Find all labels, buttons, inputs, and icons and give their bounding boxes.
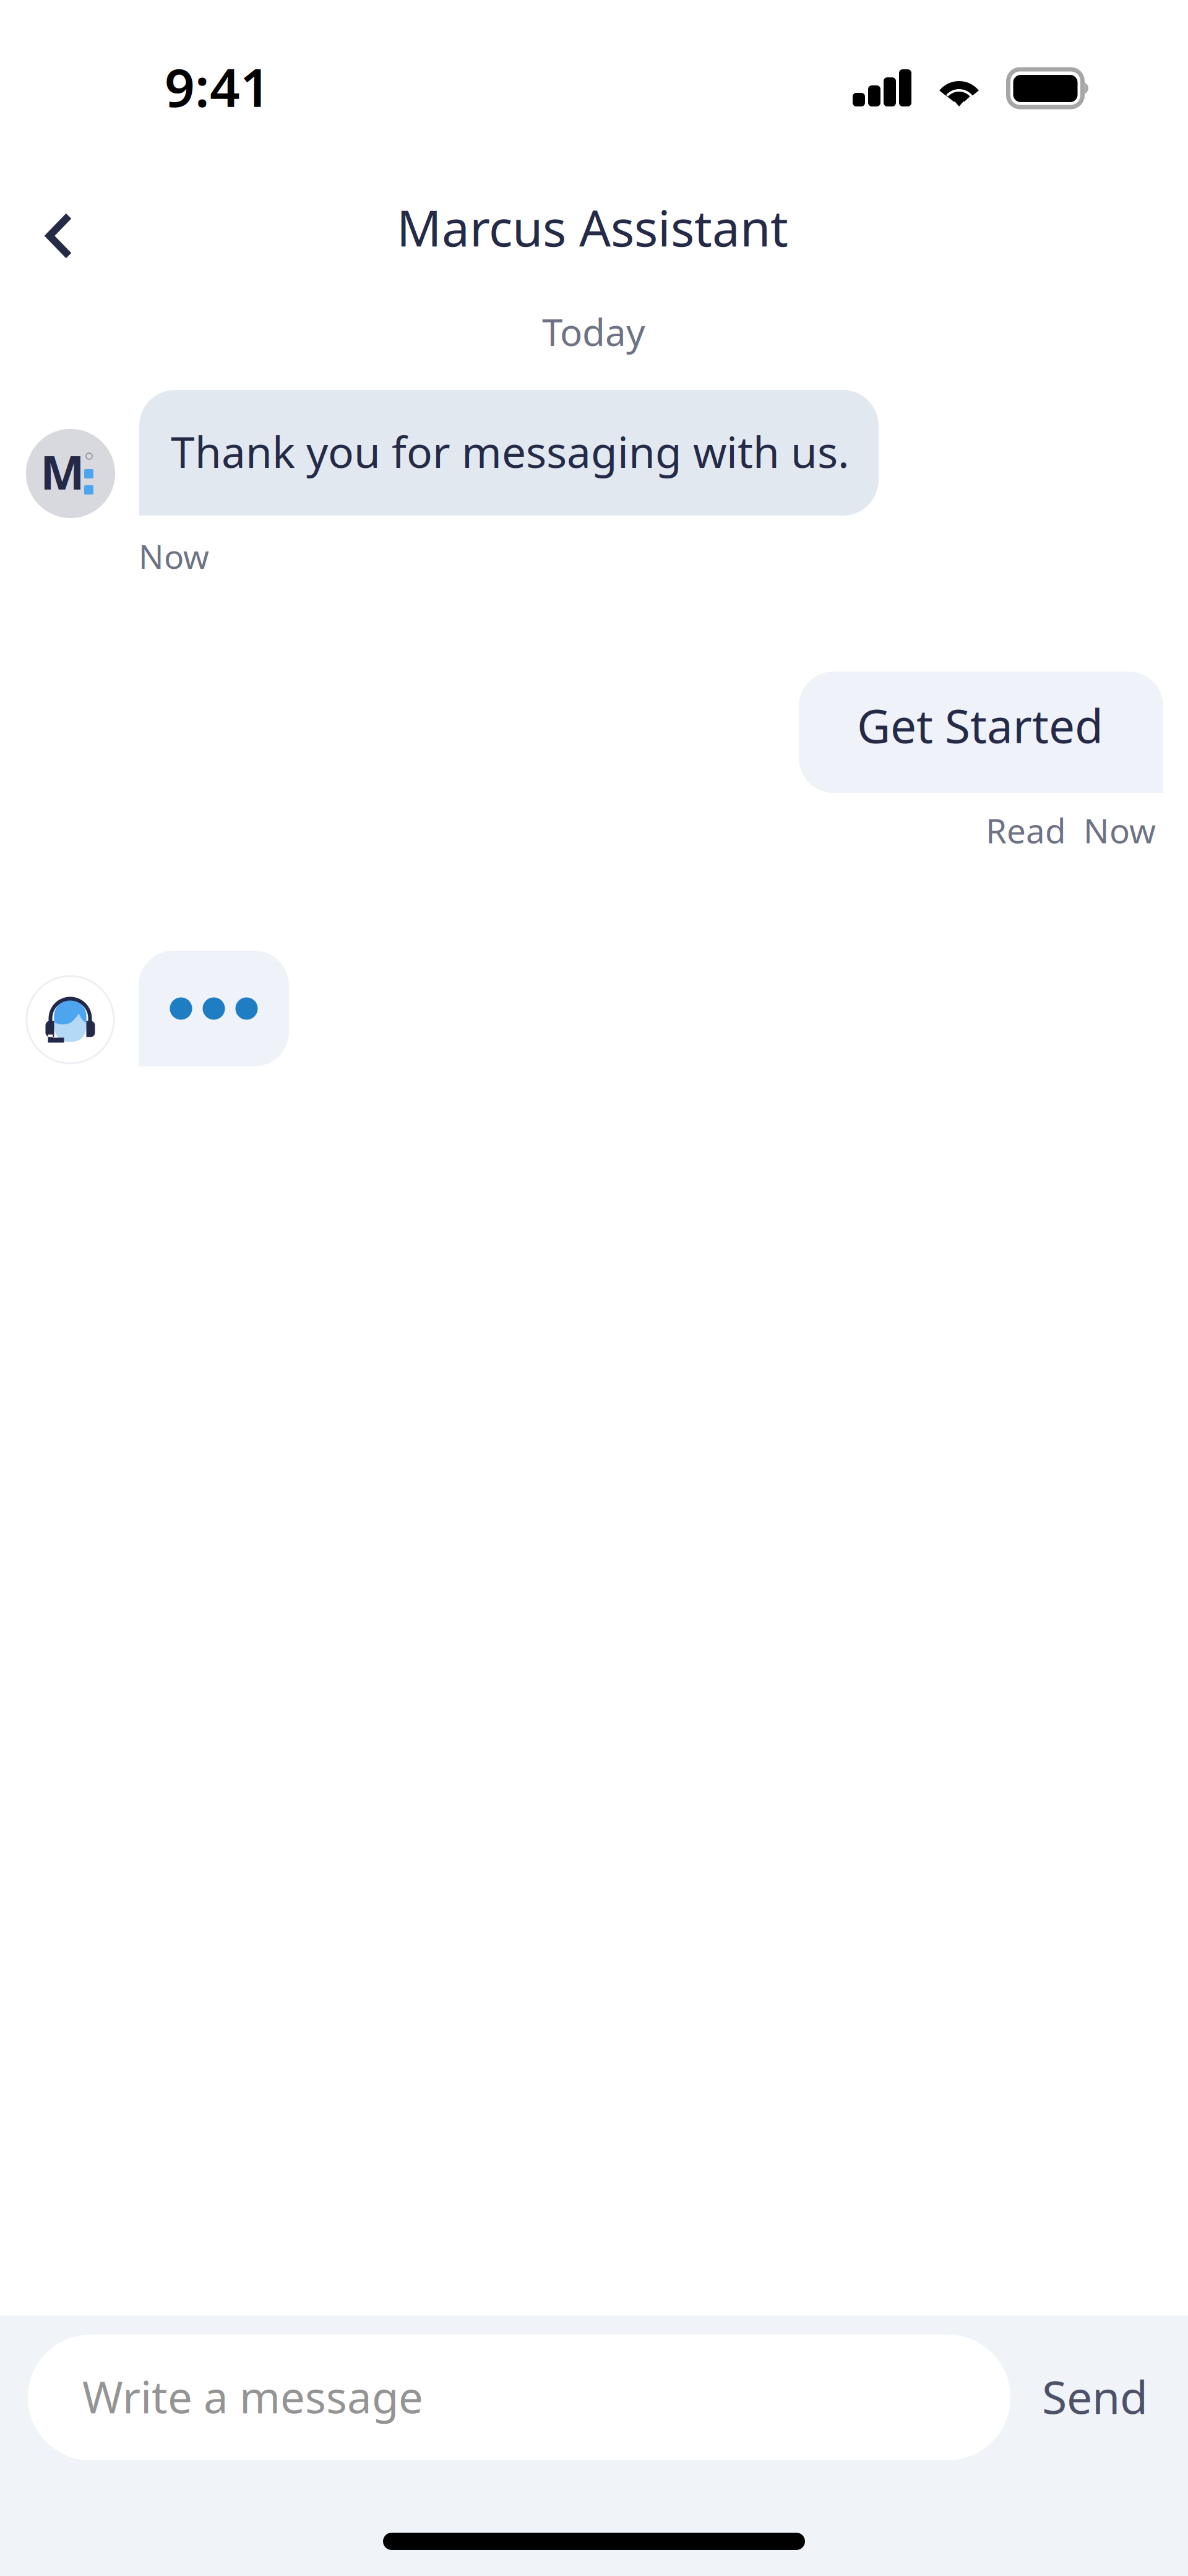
button[interactable]: Get Started bbox=[799, 672, 1163, 793]
staticText: M bbox=[40, 440, 85, 503]
staticText: Marcus Assistant bbox=[397, 194, 788, 260]
staticText: Now bbox=[139, 534, 209, 578]
staticText: Get Started bbox=[857, 694, 1103, 756]
staticText: Send bbox=[1042, 2366, 1148, 2426]
button[interactable]: Send bbox=[1031, 2346, 1159, 2446]
staticText: Thank you for messaging with us. bbox=[171, 423, 850, 480]
button[interactable]: Back bbox=[31, 197, 90, 274]
staticText: Read Now bbox=[986, 808, 1156, 853]
button[interactable]: Write a message bbox=[28, 2335, 1010, 2460]
staticText: Today bbox=[542, 307, 645, 356]
staticText: Write a message bbox=[82, 2367, 423, 2425]
staticText: 9:41 bbox=[165, 51, 270, 121]
